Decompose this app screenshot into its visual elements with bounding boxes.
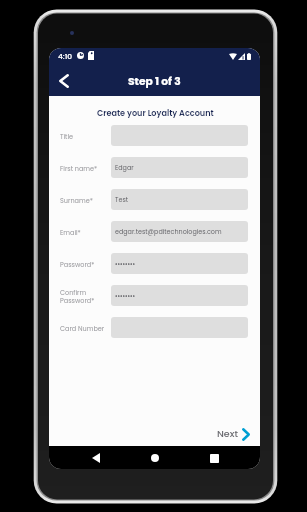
button[interactable]: Next	[217, 428, 250, 441]
button[interactable]: Back	[85, 447, 107, 469]
button[interactable]	[111, 253, 248, 274]
staticText: Confirm Password*	[60, 288, 95, 306]
button[interactable]: Home	[144, 447, 166, 469]
button[interactable]: Edgar	[111, 157, 248, 178]
staticText: Next	[217, 427, 238, 440]
staticText: Surname*	[60, 196, 93, 205]
staticText: Password*	[60, 260, 95, 269]
staticText: Edgar	[115, 163, 134, 172]
staticText: First name*	[60, 164, 98, 173]
staticText: Test	[115, 195, 129, 204]
staticText: 4:10	[58, 51, 73, 61]
button[interactable]: Test	[111, 189, 248, 210]
staticText: Card Number	[60, 324, 105, 333]
button[interactable]	[111, 285, 248, 306]
staticText: Step 1 of 3	[128, 74, 181, 89]
staticText: Email*	[60, 228, 81, 237]
staticText: Title	[60, 132, 74, 141]
staticText: edgar.test@pditechnologies.com	[115, 227, 222, 236]
button[interactable]: edgar.test@pditechnologies.com	[111, 221, 248, 242]
staticText: Create your Loyalty Account	[97, 107, 214, 118]
button[interactable]: Back	[51, 68, 77, 94]
button[interactable]: Recent apps	[203, 447, 225, 469]
